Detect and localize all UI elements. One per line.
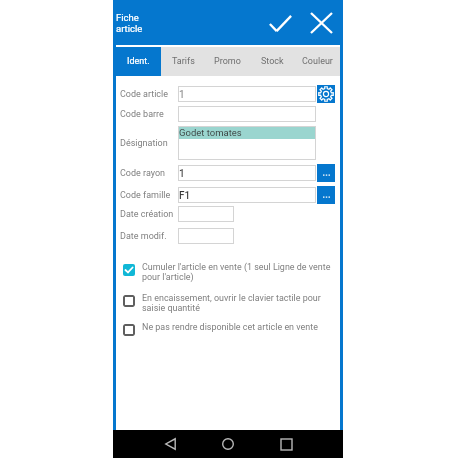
button[interactable] xyxy=(178,206,234,222)
button[interactable]: Parcourir xyxy=(317,186,335,204)
button[interactable]: F1 xyxy=(178,187,316,203)
staticText: Ident. xyxy=(127,56,150,67)
button[interactable] xyxy=(178,228,234,244)
staticText: Code famille xyxy=(120,190,182,201)
staticText: Tarifs xyxy=(172,56,195,67)
staticText: Promo xyxy=(214,56,241,67)
staticText: Code article xyxy=(120,89,182,100)
staticText: Fiche xyxy=(116,12,139,23)
staticText: Date création xyxy=(120,209,182,220)
button[interactable]: Recents xyxy=(274,432,298,456)
button[interactable]: Valider xyxy=(264,7,296,39)
staticText: Cumuler l'article en vente (1 seul Ligne… xyxy=(142,262,331,282)
button[interactable]: Back xyxy=(158,432,182,456)
button[interactable]: Couleur xyxy=(295,47,340,76)
staticText: F1 xyxy=(179,190,191,202)
staticText: Date modif. xyxy=(120,231,182,242)
staticText: Stock xyxy=(261,56,284,67)
button[interactable]: Parcourir xyxy=(317,164,335,182)
button[interactable]: Tarifs xyxy=(161,47,205,76)
button[interactable]: Fermer xyxy=(305,7,337,39)
staticText: Code barre xyxy=(120,109,182,120)
button[interactable]: Ne pas rendre disponible cet article en … xyxy=(123,324,334,336)
button[interactable]: Cumuler l'article en vente (1 seul Ligne… xyxy=(123,264,334,284)
staticText: Ne pas rendre disponible cet article en … xyxy=(142,322,318,332)
staticText: Godet tomates xyxy=(179,127,242,138)
staticText: 1 xyxy=(179,168,185,180)
button[interactable]: Paramètres xyxy=(317,85,335,103)
button[interactable]: Ident. xyxy=(116,47,161,76)
button[interactable]: Promo xyxy=(205,47,250,76)
button[interactable]: Stock xyxy=(250,47,295,76)
button[interactable]: Godet tomates xyxy=(178,126,316,160)
staticText: Désignation xyxy=(120,138,182,149)
button[interactable] xyxy=(178,106,316,122)
button[interactable]: 1 xyxy=(178,165,316,181)
staticText: Couleur xyxy=(302,56,333,67)
button[interactable]: 1 xyxy=(178,86,316,102)
staticText: article xyxy=(116,23,143,34)
staticText: En encaissement, ouvrir le clavier tacti… xyxy=(142,293,321,313)
button[interactable]: En encaissement, ouvrir le clavier tacti… xyxy=(123,295,334,315)
staticText: 1 xyxy=(179,89,185,101)
button[interactable]: Home xyxy=(216,432,240,456)
staticText: Code rayon xyxy=(120,168,182,179)
